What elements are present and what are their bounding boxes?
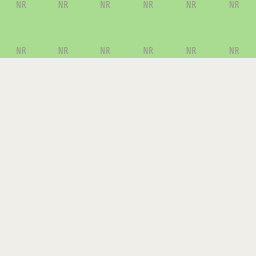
button[interactable]: NR xyxy=(127,45,170,58)
button[interactable]: NR xyxy=(170,0,213,45)
staticText: NR xyxy=(58,45,69,56)
staticText: NR xyxy=(58,0,69,10)
button[interactable]: NR xyxy=(0,0,42,45)
button[interactable]: NR xyxy=(42,45,84,58)
button[interactable]: NR xyxy=(213,45,256,58)
staticText: NR xyxy=(229,45,240,56)
staticText: NR xyxy=(229,0,240,10)
staticText: NR xyxy=(186,45,197,56)
staticText: NR xyxy=(143,45,154,56)
staticText: NR xyxy=(100,0,111,10)
button[interactable]: NR xyxy=(170,45,213,58)
button[interactable]: NR xyxy=(42,0,84,45)
button[interactable]: NR xyxy=(127,0,170,45)
button[interactable]: NR xyxy=(213,0,256,45)
button[interactable]: NR xyxy=(0,45,42,58)
staticText: NR xyxy=(16,45,27,56)
button[interactable]: NR xyxy=(84,0,127,45)
staticText: NR xyxy=(186,0,197,10)
staticText: NR xyxy=(143,0,154,10)
staticText: NR xyxy=(100,45,111,56)
button[interactable]: NR xyxy=(84,45,127,58)
staticText: NR xyxy=(16,0,27,10)
